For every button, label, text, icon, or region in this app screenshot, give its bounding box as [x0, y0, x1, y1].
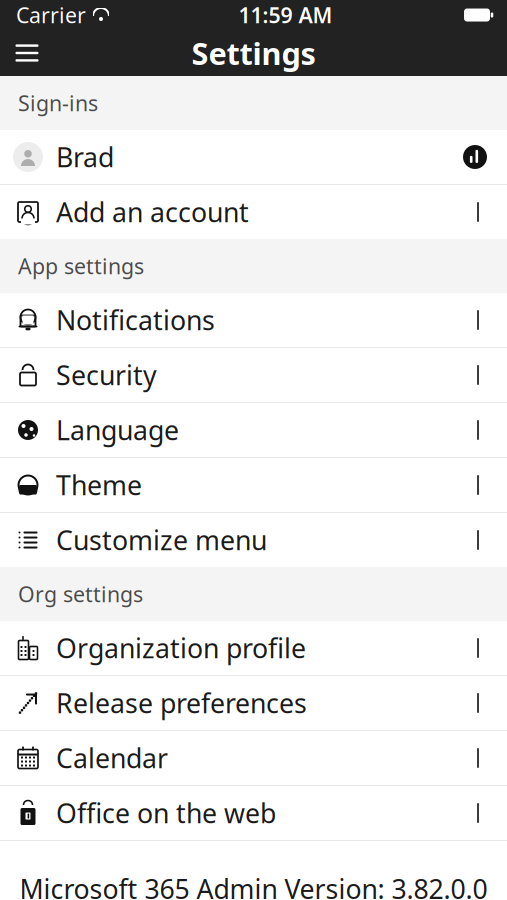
- staticText: App settings: [18, 252, 144, 280]
- staticText: Sign-ins: [18, 89, 98, 117]
- staticText: Microsoft 365 Admin Version: 3.82.0.0: [19, 871, 487, 900]
- button[interactable]: Calendar: [0, 731, 507, 785]
- button[interactable]: Theme: [0, 458, 507, 512]
- staticText: Theme: [56, 467, 142, 503]
- staticText: Brad: [56, 139, 114, 175]
- staticText: Security: [56, 357, 157, 393]
- staticText: Settings: [191, 33, 315, 73]
- button[interactable]: Security: [0, 348, 507, 402]
- staticText: Language: [56, 412, 179, 448]
- button[interactable]: Customize menu: [0, 513, 507, 567]
- staticText: 11:59 AM: [238, 1, 332, 29]
- button[interactable]: Add an account: [0, 185, 507, 239]
- staticText: Add an account: [56, 194, 249, 230]
- button[interactable]: Brad: [0, 130, 507, 184]
- staticText: Notifications: [56, 302, 215, 338]
- staticText: Carrier: [16, 1, 86, 29]
- staticText: Organization profile: [56, 630, 306, 666]
- staticText: Release preferences: [56, 685, 307, 721]
- staticText: Calendar: [56, 740, 168, 776]
- button[interactable]: Office on the web: [0, 786, 507, 840]
- button[interactable]: Language: [0, 403, 507, 457]
- staticText: Office on the web: [56, 795, 276, 831]
- button[interactable]: Organization profile: [0, 621, 507, 675]
- button[interactable]: Notifications: [0, 293, 507, 347]
- button[interactable]: Release preferences: [0, 676, 507, 730]
- staticText: Org settings: [18, 580, 143, 608]
- button[interactable]: Menu: [0, 30, 54, 76]
- staticText: Customize menu: [56, 522, 267, 558]
